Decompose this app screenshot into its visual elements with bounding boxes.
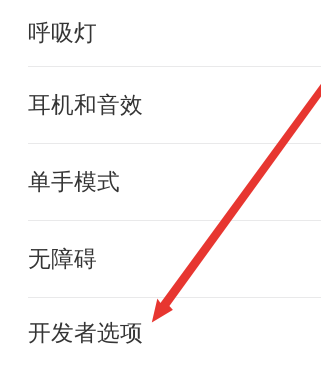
staticText: 开发者选项 [28,319,143,347]
staticText: 无障碍 [28,245,97,273]
staticText: 耳机和音效 [28,91,143,119]
staticText: 呼吸灯 [28,19,97,47]
staticText: 单手模式 [28,168,120,196]
button[interactable]: 呼吸灯 [0,0,321,66]
button[interactable]: 开发者选项 [0,298,321,366]
button[interactable]: 单手模式 [0,144,321,220]
button[interactable]: 无障碍 [0,221,321,297]
button[interactable]: 耳机和音效 [0,67,321,143]
